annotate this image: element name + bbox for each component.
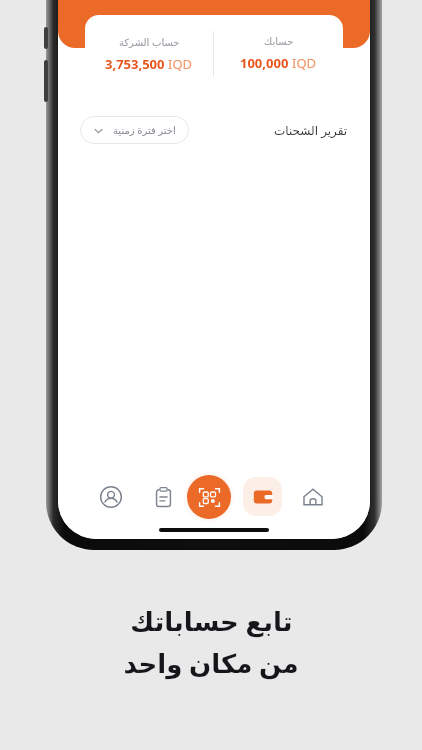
staticText: 100,000	[240, 54, 289, 72]
staticText: تقرير الشحنات	[274, 122, 348, 138]
button[interactable]: اختر فترة زمنية	[80, 116, 189, 144]
button[interactable]: Home	[295, 479, 331, 515]
staticText: IQD	[168, 55, 193, 73]
button[interactable]: Profile	[93, 479, 129, 515]
staticText: تابع حساباتك	[130, 603, 293, 638]
staticText: من مكان واحد	[123, 645, 299, 680]
button[interactable]: حساب الشركة	[85, 15, 343, 92]
staticText: حساب الشركة	[119, 35, 180, 49]
button[interactable]: Orders	[145, 479, 181, 515]
button[interactable]: Wallet	[243, 477, 282, 516]
staticText: IQD	[292, 54, 317, 72]
staticText: اختر فترة زمنية	[113, 123, 176, 137]
button[interactable]: Scan QR code	[187, 475, 231, 519]
staticText: 3,753,500	[105, 55, 165, 73]
staticText: حسابك	[264, 36, 294, 48]
